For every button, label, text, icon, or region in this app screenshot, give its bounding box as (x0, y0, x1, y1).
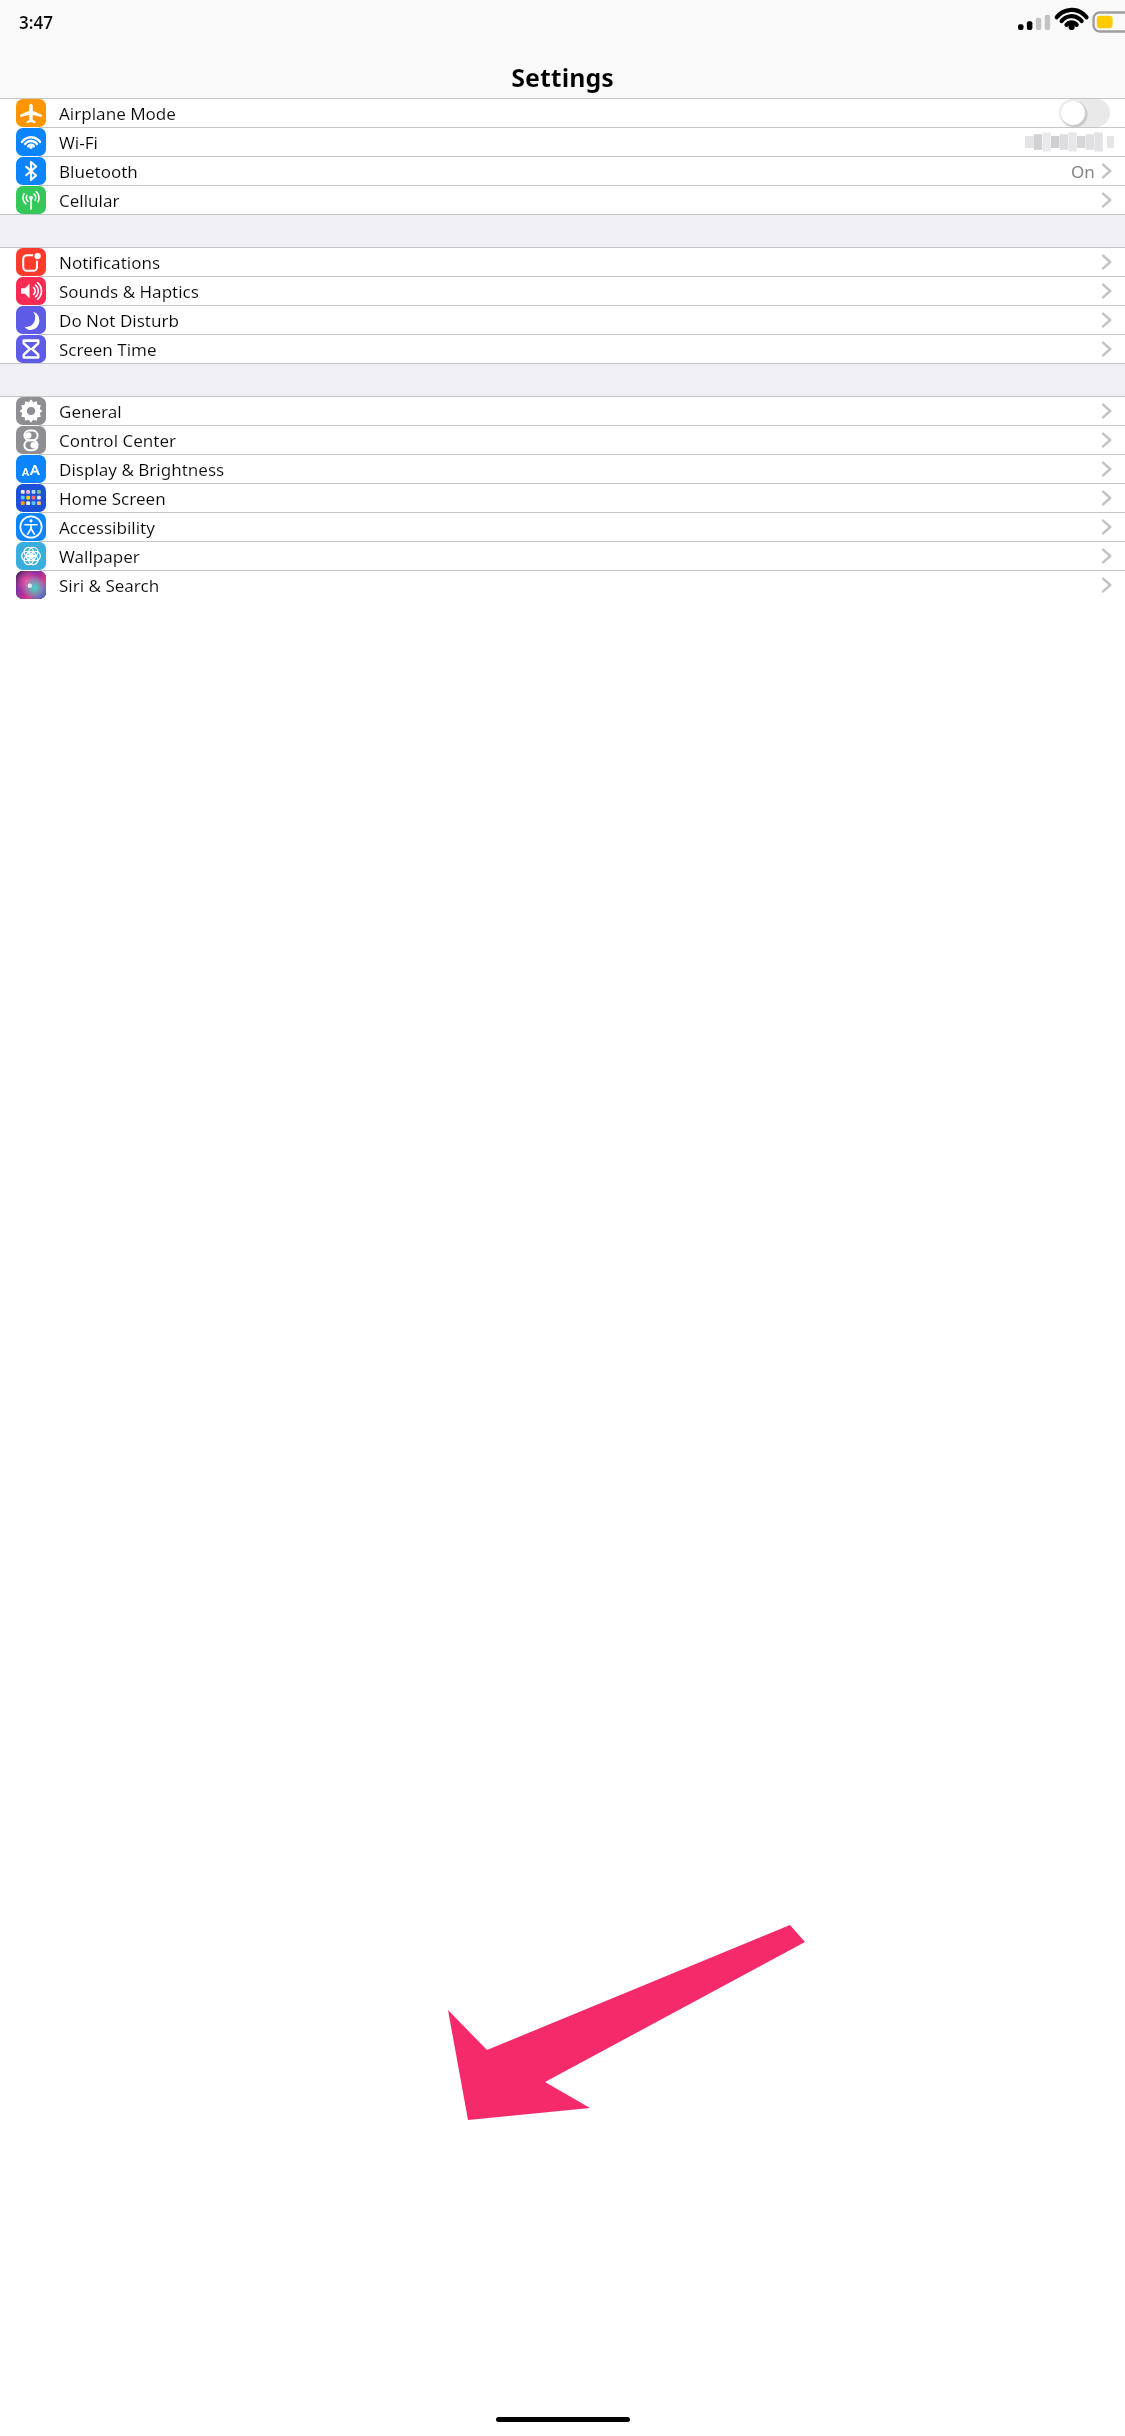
staticText: Do Not Disturb (59, 309, 179, 332)
button[interactable]: Airplane Mode toggle (1059, 99, 1110, 127)
button[interactable]: Siri & Search (0, 571, 1125, 599)
button[interactable]: Airplane Mode (0, 99, 1125, 127)
staticText: Settings (511, 60, 614, 94)
staticText: Control Center (59, 429, 177, 452)
button[interactable]: Sounds & Haptics (0, 277, 1125, 305)
button[interactable]: Control Center (0, 426, 1125, 454)
staticText: Home Screen (59, 487, 166, 510)
staticText: A (30, 459, 40, 479)
button[interactable]: Wi-Fi (0, 128, 1125, 156)
staticText: A (22, 464, 30, 479)
button[interactable]: Home Screen (0, 484, 1125, 512)
button[interactable]: Do Not Disturb (0, 306, 1125, 334)
staticText: Wallpaper (59, 545, 140, 568)
staticText: Screen Time (59, 338, 157, 361)
staticText: Airplane Mode (59, 102, 176, 125)
button[interactable]: Notifications (0, 248, 1125, 276)
staticText: 3:47 (19, 11, 53, 34)
staticText: Cellular (59, 189, 120, 212)
staticText: Siri & Search (59, 574, 160, 597)
staticText: General (59, 400, 122, 423)
button[interactable]: Wallpaper (0, 542, 1125, 570)
staticText: Notifications (59, 251, 161, 274)
button[interactable]: Cellular (0, 186, 1125, 214)
button[interactable]: Bluetooth (0, 157, 1125, 185)
staticText: Bluetooth (59, 160, 138, 183)
staticText: Wi-Fi (59, 131, 98, 154)
staticText: Display & Brightness (59, 458, 225, 481)
staticText: Sounds & Haptics (59, 280, 199, 303)
button[interactable]: Accessibility (0, 513, 1125, 541)
staticText: Accessibility (59, 516, 155, 539)
button[interactable]: General (0, 397, 1125, 425)
staticText: On (1071, 160, 1095, 183)
button[interactable]: Screen Time (0, 335, 1125, 363)
button[interactable]: A (0, 455, 1125, 483)
